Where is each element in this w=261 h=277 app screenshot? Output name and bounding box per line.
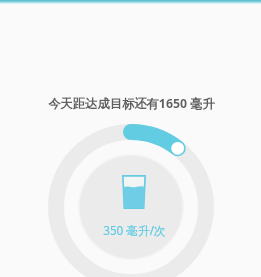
staticText: 350 毫升/次 bbox=[103, 222, 166, 238]
staticText: 今天距达成目标还有1650 毫升 bbox=[48, 95, 215, 112]
button[interactable]: 喝一杯水 350 毫升 bbox=[78, 154, 184, 260]
